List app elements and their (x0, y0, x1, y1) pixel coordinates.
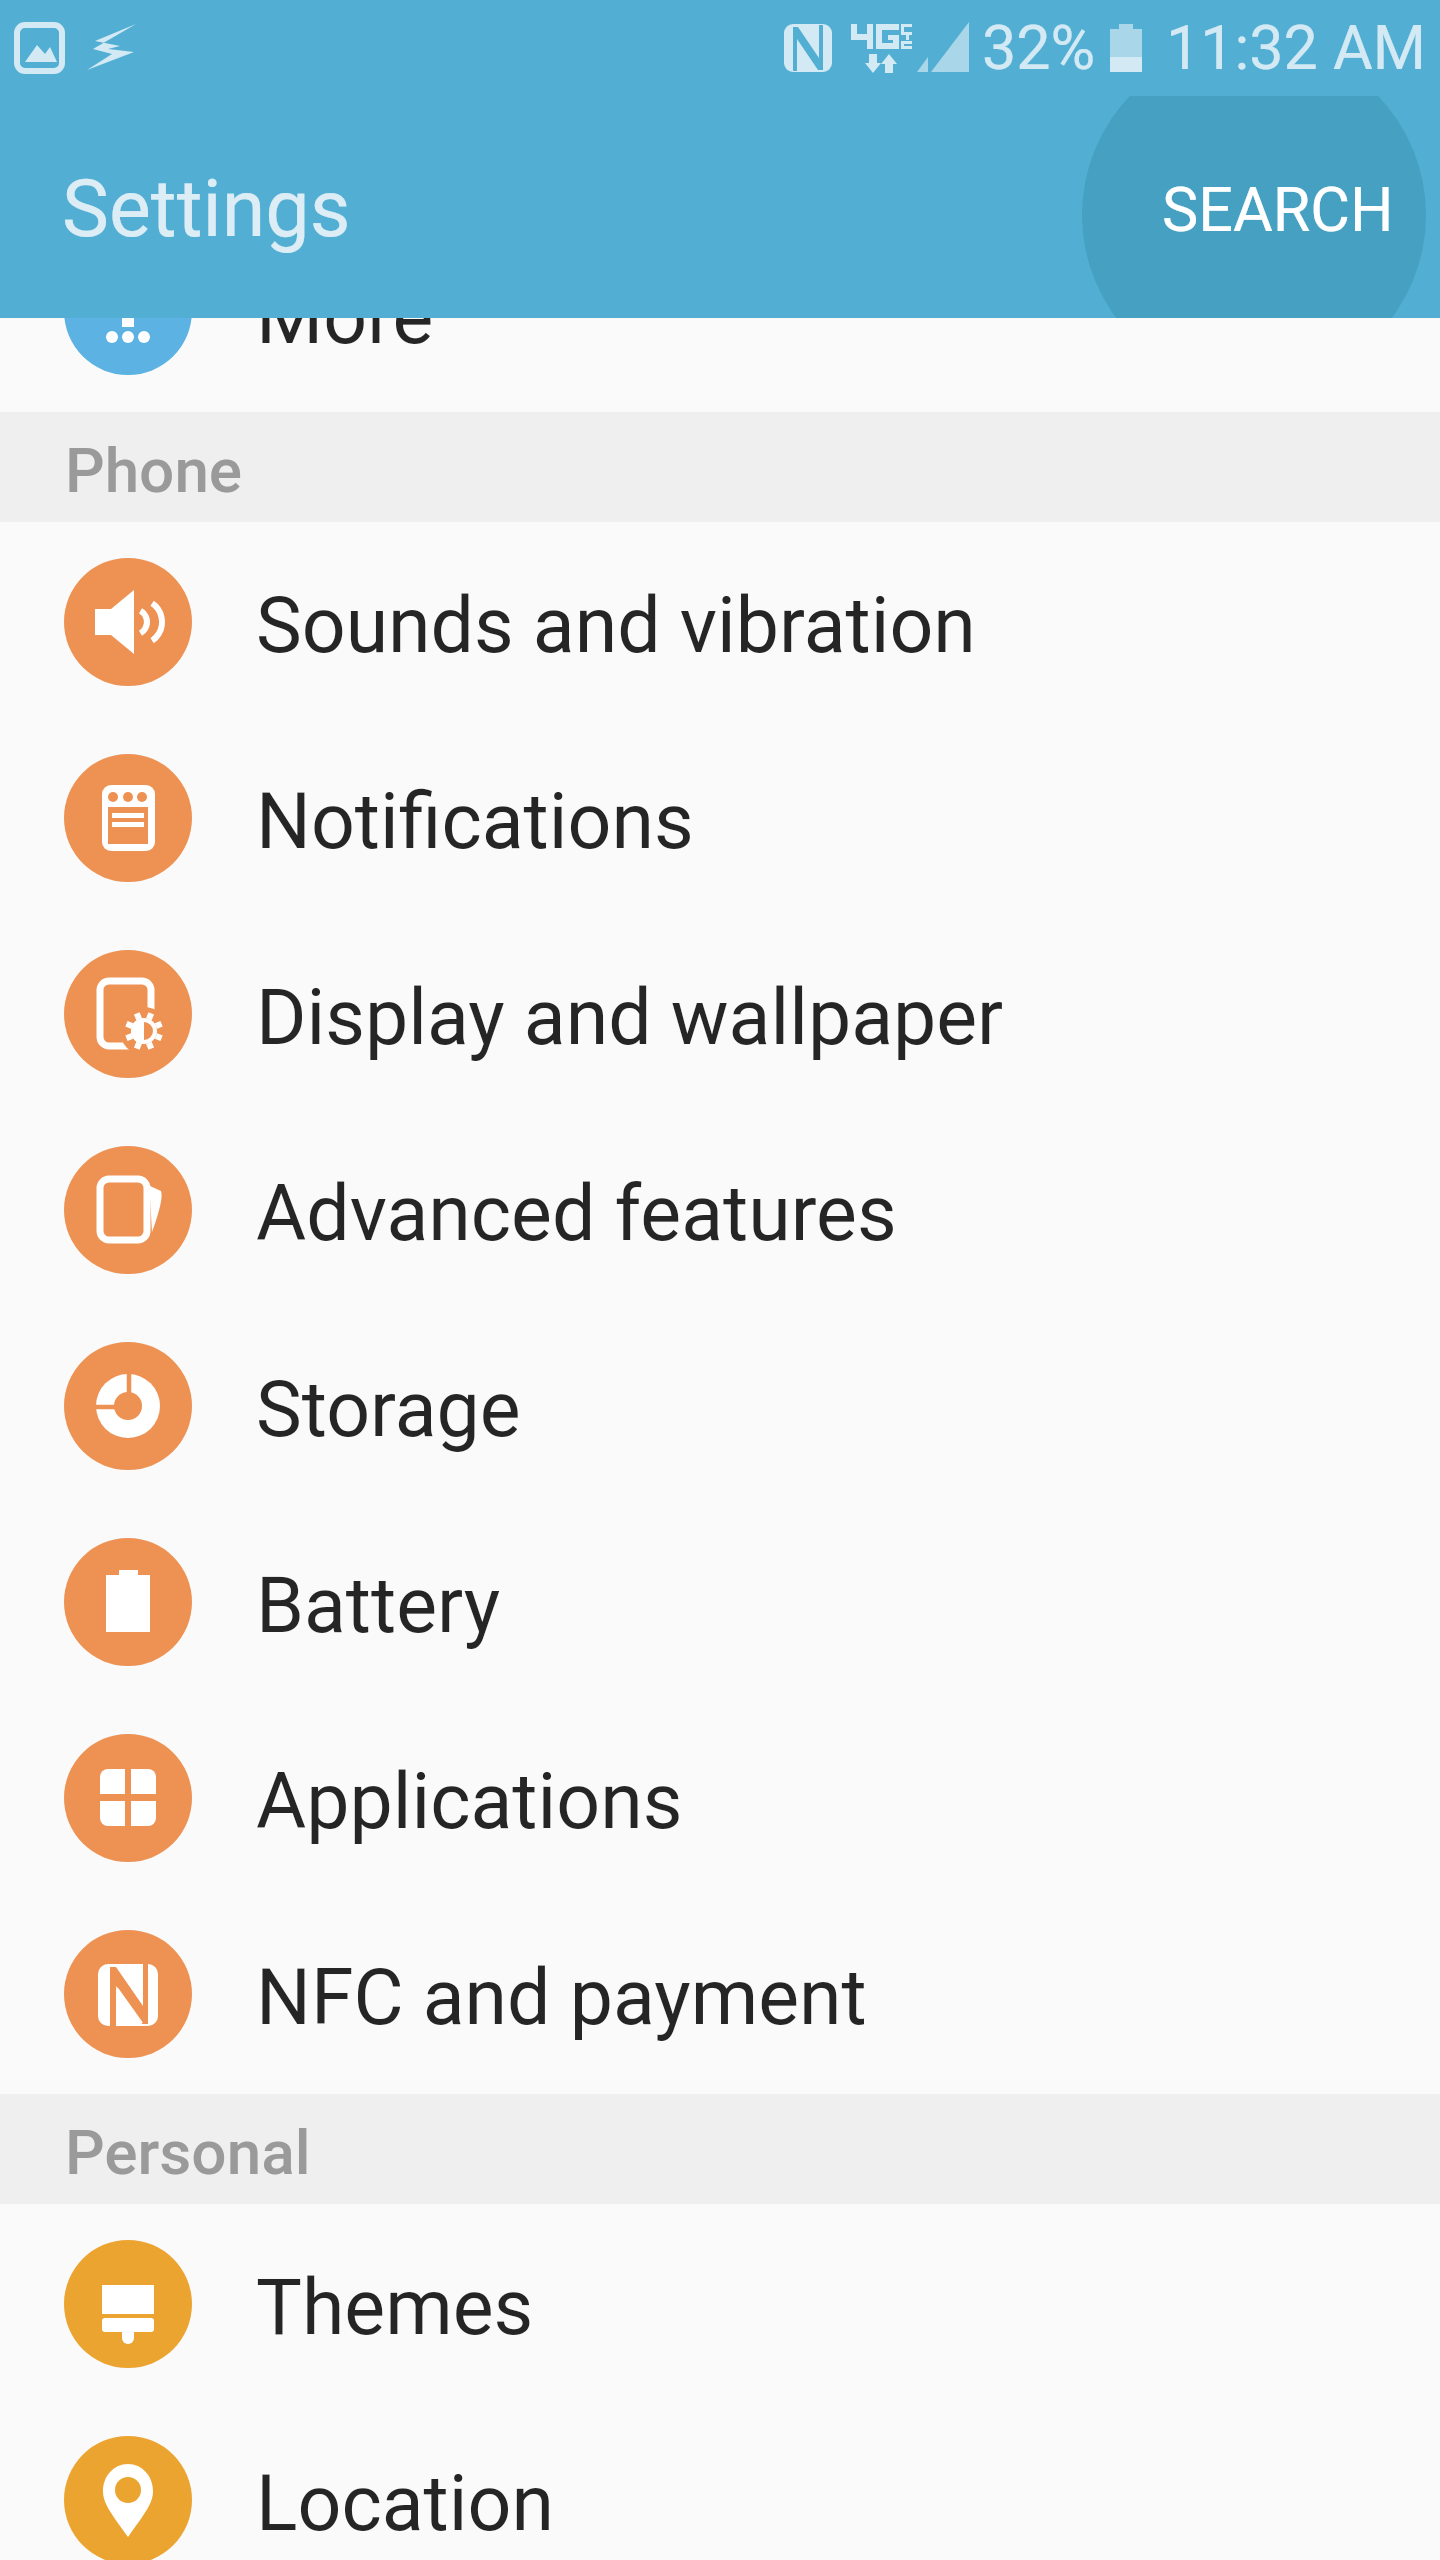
staticText: Settings (62, 163, 351, 256)
staticText: Themes (256, 2263, 534, 2353)
button[interactable]: Storage (0, 1306, 1440, 1502)
staticText: Personal (65, 2116, 311, 2189)
button[interactable]: Search (1107, 50, 1440, 318)
staticText: Sounds and vibration (256, 581, 976, 671)
staticText: Notifications (256, 777, 694, 867)
button[interactable]: Display and wallpaper (0, 914, 1440, 1110)
staticText: 11:32 AM (1166, 12, 1427, 83)
button[interactable]: Location (0, 2400, 1440, 2560)
button[interactable]: More (0, 216, 1440, 412)
staticText: Applications (256, 1757, 683, 1847)
staticText: More (256, 272, 434, 362)
staticText: NFC and payment (256, 1953, 867, 2043)
staticText: 32% (982, 12, 1096, 83)
staticText: SEARCH (1162, 174, 1394, 245)
staticText: Display and wallpaper (256, 973, 1004, 1063)
button[interactable]: Notifications (0, 718, 1440, 914)
button[interactable]: Advanced features (0, 1110, 1440, 1306)
button[interactable]: Sounds and vibration (0, 522, 1440, 718)
staticText: Storage (256, 1365, 521, 1455)
button[interactable]: Battery (0, 1502, 1440, 1698)
staticText: Location (256, 2459, 554, 2549)
staticText: Phone (65, 434, 243, 507)
staticText: Battery (256, 1561, 501, 1651)
button[interactable]: NFC and payment (0, 1894, 1440, 2090)
button[interactable]: Applications (0, 1698, 1440, 1894)
button[interactable]: Themes (0, 2204, 1440, 2400)
staticText: Advanced features (256, 1169, 897, 1259)
